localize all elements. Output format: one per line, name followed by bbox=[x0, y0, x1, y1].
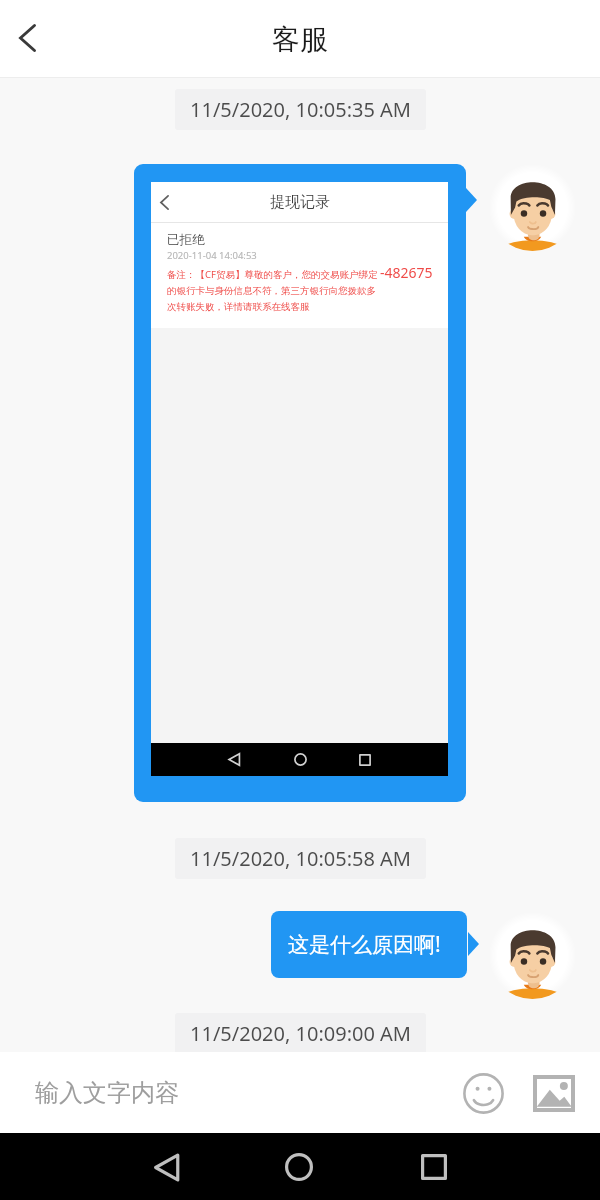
staticText: 客服 bbox=[272, 22, 328, 57]
button[interactable]: User avatar bbox=[489, 164, 576, 251]
staticText: 备注：【CF贸易】尊敬的客户，您的交易账户绑定 -482675 的银行卡与身份信… bbox=[167, 263, 433, 313]
staticText: 提现记录 bbox=[270, 193, 330, 212]
button[interactable]: Back bbox=[0, 0, 55, 78]
button[interactable]: Back bbox=[137, 1137, 197, 1197]
staticText: 这是什么原因啊! bbox=[288, 930, 441, 959]
button[interactable]: 这是什么原因啊! bbox=[271, 911, 467, 978]
staticText: 11/5/2020, 10:09:00 AM bbox=[190, 1020, 411, 1047]
staticText: 2020-11-04 14:04:53 bbox=[167, 249, 257, 262]
button[interactable]: Home bbox=[269, 1137, 329, 1197]
button[interactable]: User avatar bbox=[489, 912, 576, 999]
button[interactable]: Image message bbox=[134, 164, 466, 802]
button[interactable]: Emoji bbox=[458, 1068, 508, 1118]
button[interactable]: Recent apps bbox=[404, 1137, 464, 1197]
button[interactable]: 11/5/2020, 10:09:00 AM bbox=[175, 1013, 426, 1054]
staticText: 已拒绝 bbox=[167, 232, 205, 248]
staticText: 11/5/2020, 10:05:58 AM bbox=[190, 845, 411, 872]
button[interactable]: Send image bbox=[528, 1067, 580, 1119]
staticText: 输入文字内容 bbox=[35, 1078, 179, 1108]
button[interactable]: 11/5/2020, 10:05:58 AM bbox=[175, 838, 426, 879]
staticText: 11/5/2020, 10:05:35 AM bbox=[190, 96, 411, 123]
button[interactable]: 11/5/2020, 10:05:35 AM bbox=[175, 89, 426, 130]
